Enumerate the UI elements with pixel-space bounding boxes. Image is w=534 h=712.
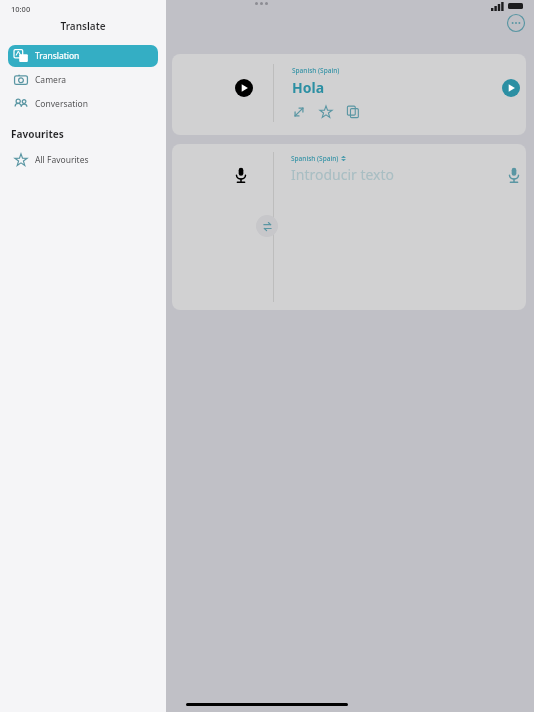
staticText: 10:00 <box>11 4 31 14</box>
button[interactable]: Camera <box>8 69 158 91</box>
staticText: Favourites <box>11 127 64 141</box>
staticText: Hola <box>292 78 325 97</box>
button[interactable]: Microphone source <box>232 166 250 184</box>
button[interactable]: Conversation <box>8 93 158 115</box>
button[interactable]: All Favourites <box>8 149 158 171</box>
button[interactable]: Favourite <box>319 105 333 119</box>
button[interactable]: More options <box>506 13 526 33</box>
staticText: Conversation <box>35 98 88 110</box>
button[interactable]: Expand <box>292 105 306 119</box>
button[interactable]: Microphone target <box>505 166 523 184</box>
button[interactable]: Play translation <box>502 79 520 97</box>
staticText: Introducir texto <box>291 165 395 184</box>
button[interactable]: Play source <box>235 79 253 97</box>
staticText: Camera <box>35 74 66 86</box>
staticText: Translation <box>35 50 80 62</box>
staticText: Spanish (Spain) <box>292 66 340 75</box>
button[interactable]: Translation <box>8 45 158 67</box>
button[interactable]: Copy <box>346 105 360 119</box>
button[interactable]: Swap languages <box>256 215 278 237</box>
staticText: Spanish (Spain) <box>291 154 339 163</box>
staticText: All Favourites <box>35 154 89 166</box>
staticText: Translate <box>0 19 166 33</box>
